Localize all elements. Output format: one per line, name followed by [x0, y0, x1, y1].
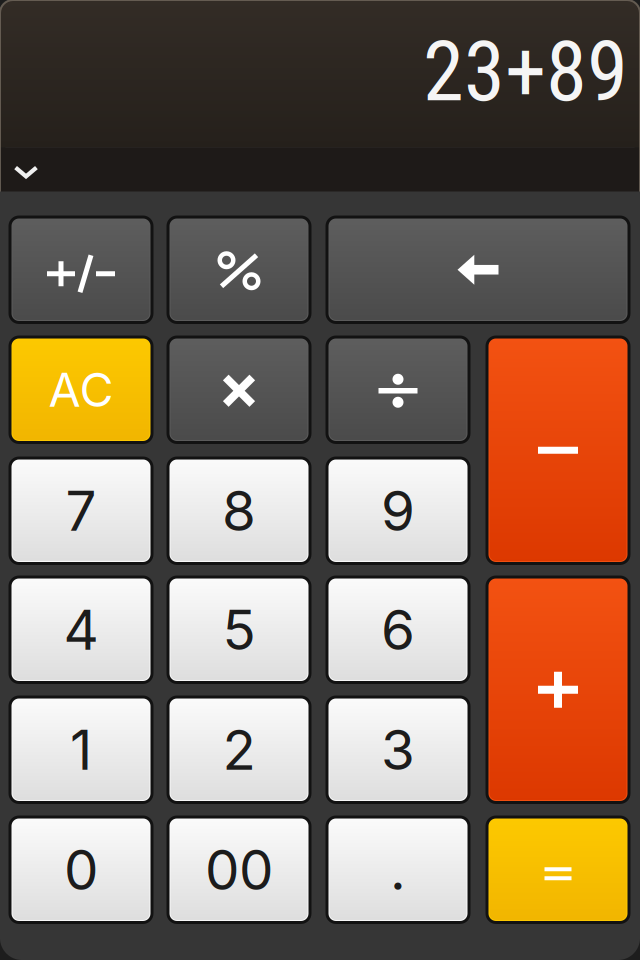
button[interactable]: 8	[168, 458, 310, 563]
button[interactable]: 5	[168, 577, 310, 682]
staticText: 9	[381, 478, 415, 544]
button[interactable]: 4	[10, 577, 152, 682]
button[interactable]: 9	[327, 458, 469, 563]
staticText: .	[390, 837, 406, 903]
staticText: AC	[48, 361, 113, 418]
button[interactable]: Divide	[327, 337, 469, 442]
button[interactable]: 0	[10, 817, 152, 922]
button[interactable]: 3	[327, 697, 469, 802]
button[interactable]: 00	[168, 817, 310, 922]
staticText: 4	[63, 597, 98, 663]
staticText: 00	[205, 837, 273, 903]
button[interactable]: AC	[10, 337, 152, 442]
staticText: 3	[381, 717, 415, 783]
staticText: 8	[222, 478, 256, 544]
staticText: 23+89	[423, 24, 628, 120]
button[interactable]: Backspace	[327, 217, 629, 322]
staticText: 6	[381, 597, 415, 663]
button[interactable]: .	[327, 817, 469, 922]
staticText: 0	[64, 837, 98, 903]
button[interactable]: 6	[327, 577, 469, 682]
button[interactable]: Equals	[487, 817, 629, 922]
staticText: 7	[65, 478, 96, 544]
button[interactable]: 1	[10, 697, 152, 802]
staticText: 1	[70, 717, 92, 783]
button[interactable]: Hide keypad	[0, 150, 55, 194]
staticText: 5	[222, 597, 255, 663]
button[interactable]: Minus	[487, 337, 629, 563]
button[interactable]: 2	[168, 697, 310, 802]
button[interactable]: Multiply	[168, 337, 310, 442]
button[interactable]: Plus minus	[10, 217, 152, 322]
button[interactable]: Plus	[487, 577, 629, 802]
staticText: 2	[222, 717, 255, 783]
button[interactable]: Percent	[168, 217, 310, 322]
button[interactable]: 7	[10, 458, 152, 563]
